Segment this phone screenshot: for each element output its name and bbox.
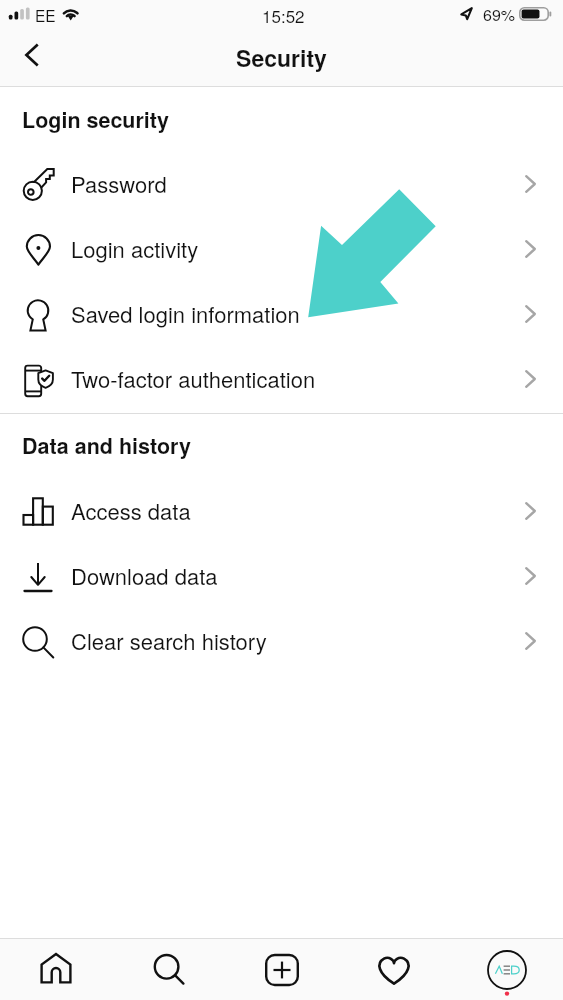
staticText: Password [71, 168, 167, 200]
button[interactable]: Login activity [0, 216, 563, 281]
staticText: Login activity [71, 233, 199, 265]
staticText: Access data [71, 495, 191, 527]
button[interactable]: Access data [0, 478, 563, 543]
staticText: Security [0, 41, 563, 74]
button[interactable]: Home [20, 939, 92, 1000]
staticText: Two-factor authentication [71, 363, 316, 395]
button[interactable]: Search [133, 939, 205, 1000]
staticText: 69% [483, 3, 516, 26]
staticText: EE [35, 4, 56, 26]
button[interactable]: Profile [471, 939, 543, 1000]
button[interactable]: Clear search history [0, 608, 563, 673]
button[interactable]: Download data [0, 543, 563, 608]
staticText: Login security [22, 104, 169, 135]
staticText: Saved login information [71, 298, 300, 330]
button[interactable]: Two-factor authentication [0, 346, 563, 411]
button[interactable]: Activity [358, 939, 430, 1000]
button[interactable]: Back [6, 31, 58, 79]
staticText: Download data [71, 560, 218, 592]
button[interactable]: Saved login information [0, 281, 563, 346]
button[interactable]: Password [0, 151, 563, 216]
button[interactable]: New post [246, 939, 318, 1000]
staticText: Clear search history [71, 625, 267, 657]
staticText: 15:52 [262, 3, 305, 27]
staticText: Data and history [22, 430, 191, 461]
